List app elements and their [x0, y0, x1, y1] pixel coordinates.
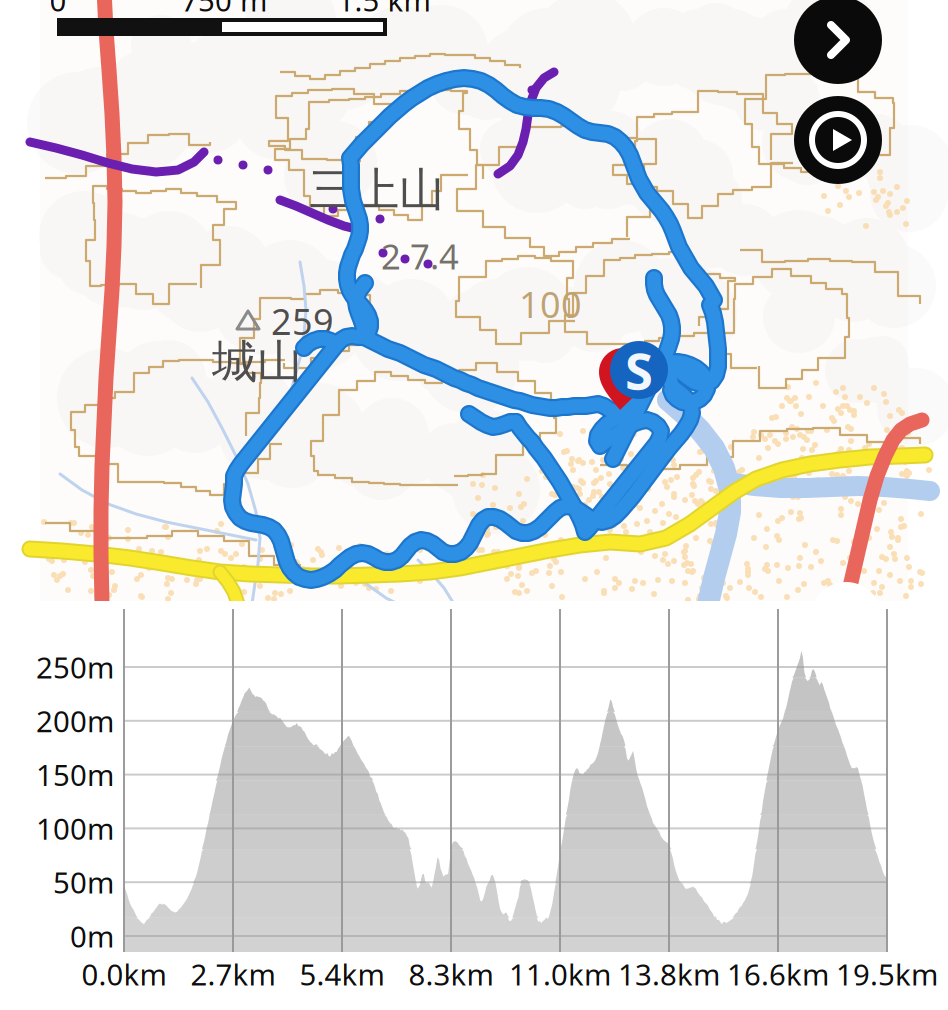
staticText: 三上山 — [309, 162, 444, 218]
staticText: 50m — [53, 863, 114, 902]
staticText: 城山 — [212, 334, 302, 390]
staticText: S — [625, 336, 653, 404]
staticText: 250m — [36, 647, 114, 686]
staticText: 0 — [49, 0, 66, 19]
staticText: 5.4km — [299, 954, 384, 993]
staticText: 8.3km — [408, 954, 493, 993]
staticText: 200m — [36, 701, 114, 740]
staticText: 0m — [70, 916, 114, 955]
staticText: 13.8km — [618, 954, 720, 993]
staticText: 2 7.4 — [381, 233, 459, 279]
staticText: 19.5km — [836, 954, 938, 993]
button[interactable]: Expand map — [794, 0, 882, 84]
staticText: 150m — [36, 755, 114, 794]
button[interactable]: Play route animation — [794, 96, 882, 184]
staticText: 1.5 km — [337, 0, 430, 19]
staticText: 0.0km — [81, 954, 166, 993]
button[interactable]: Locate me — [0, 0, 948, 1010]
staticText: 16.6km — [727, 954, 829, 993]
staticText: 100 — [519, 280, 582, 328]
staticText: 100m — [36, 809, 114, 848]
staticText: 11.0km — [509, 954, 611, 993]
staticText: 750 m — [181, 0, 267, 19]
staticText: 259 — [271, 297, 334, 345]
staticText: 2.7km — [190, 954, 275, 993]
